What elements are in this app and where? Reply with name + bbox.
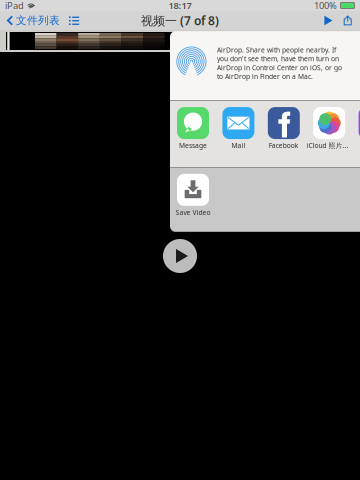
staticText: Save Video	[175, 208, 210, 217]
button[interactable]: Share	[338, 11, 357, 30]
staticText: AirDrop. Share with people nearby. If yo…	[217, 45, 342, 81]
staticText: iPad	[5, 0, 24, 12]
button[interactable]: Facebook	[261, 105, 306, 152]
staticText: 100%	[314, 0, 337, 12]
staticText: 文件列表	[16, 14, 60, 27]
button[interactable]: Save Video	[170, 172, 216, 219]
button[interactable]: Play video	[163, 239, 197, 273]
staticText: Message	[179, 141, 207, 150]
button[interactable]: Play	[318, 11, 338, 30]
button[interactable]: Message	[170, 105, 216, 152]
staticText: 视频一 (7 of 8)	[141, 12, 219, 28]
staticText: 18:17	[168, 0, 191, 12]
button[interactable]: List view	[64, 11, 84, 30]
staticText: Mail	[231, 141, 245, 150]
button[interactable]: Op	[352, 105, 360, 152]
button[interactable]: iCloud 照片共享	[306, 105, 352, 152]
staticText: Facebook	[269, 141, 299, 150]
button[interactable]: Mail	[216, 105, 261, 152]
button[interactable]: 文件列表	[3, 11, 64, 30]
staticText: iCloud 照片共享	[306, 141, 352, 150]
